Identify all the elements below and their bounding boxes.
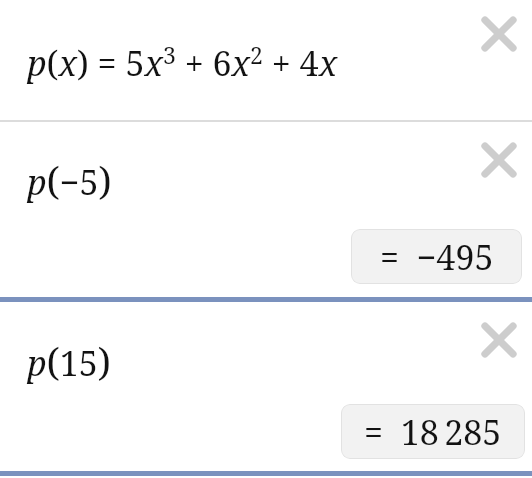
button[interactable]: = −495 [351,229,522,284]
button[interactable]: Delete row [477,138,521,182]
button[interactable]: Delete row [477,12,521,56]
staticText: = −495 [380,234,494,280]
button[interactable]: Delete row [477,318,521,362]
staticText: = 18 285 [364,409,502,455]
button[interactable]: p(−5) [0,122,532,297]
button[interactable]: p(15) [0,302,532,471]
button[interactable]: p(x) = 5x3 + 6x2 + 4x [0,0,532,120]
staticText: p(x) = 5x3 + 6x2 + 4x [27,39,338,86]
button[interactable]: = 18 285 [341,404,525,459]
staticText: p(15) [27,335,111,387]
staticText: p(−5) [27,154,112,206]
